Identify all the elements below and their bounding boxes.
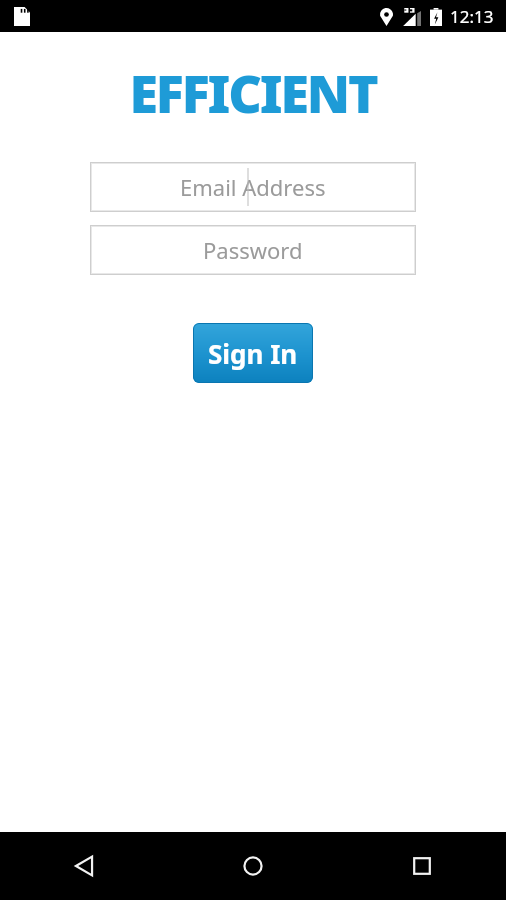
- button[interactable]: Email Address: [90, 162, 416, 212]
- button[interactable]: Home: [168, 832, 337, 900]
- staticText: EFFICIENT FOUNDATIONS: [8, 57, 498, 123]
- button[interactable]: Back: [0, 832, 168, 900]
- button[interactable]: Recent apps: [337, 832, 506, 900]
- button[interactable]: Sign In: [193, 323, 313, 383]
- button[interactable]: Password: [90, 225, 416, 275]
- staticText: Password: [203, 235, 303, 265]
- staticText: Sign In: [208, 336, 298, 371]
- staticText: 12:13: [450, 5, 494, 28]
- staticText: Email Address: [180, 172, 326, 202]
